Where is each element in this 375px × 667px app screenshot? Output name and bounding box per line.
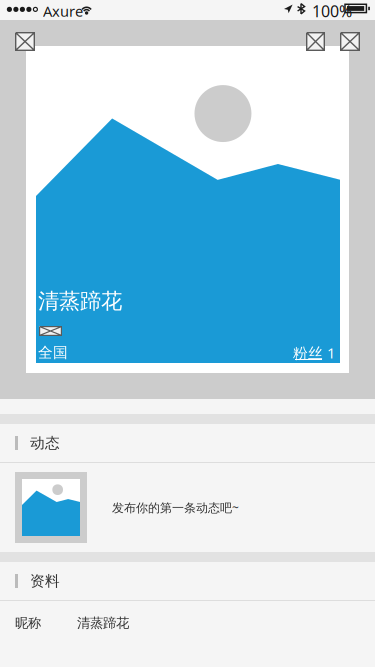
button[interactable]: 发布你的第一条动态吧~ xyxy=(0,463,375,552)
staticText: 资料 xyxy=(30,572,60,590)
staticText: 粉丝 1 xyxy=(293,343,335,362)
staticText: 清蒸蹄花 xyxy=(77,615,129,631)
staticText: 发布你的第一条动态吧~ xyxy=(112,499,239,515)
button[interactable]: Back xyxy=(15,32,35,51)
staticText: Axure xyxy=(43,1,83,21)
button[interactable]: 粉丝 1 xyxy=(293,343,335,362)
staticText: 100% xyxy=(312,0,352,22)
button[interactable]: More xyxy=(340,32,360,51)
staticText: 昵称 xyxy=(15,615,41,631)
staticText: 全国 xyxy=(38,344,68,362)
button[interactable]: Share xyxy=(306,32,325,51)
staticText: 动态 xyxy=(30,434,60,452)
button[interactable]: 昵称 xyxy=(0,601,375,645)
staticText: 清蒸蹄花 xyxy=(38,288,122,314)
